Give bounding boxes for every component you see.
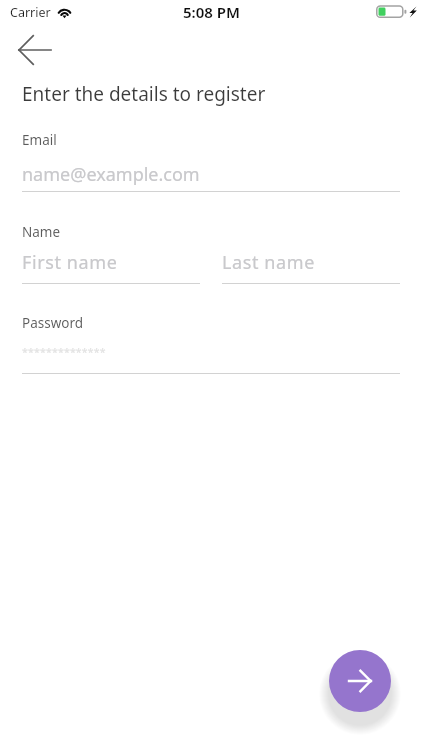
staticText: Enter the details to register bbox=[22, 81, 266, 107]
button[interactable]: Continue bbox=[329, 650, 391, 712]
other: Battery charging bbox=[376, 5, 418, 18]
button[interactable]: Back bbox=[6, 32, 64, 68]
staticText: name@example.com bbox=[22, 162, 200, 187]
button[interactable]: First name bbox=[22, 242, 200, 284]
staticText: 5:08 PM bbox=[183, 2, 240, 22]
button[interactable]: name@example.com bbox=[22, 154, 400, 192]
staticText: Last name bbox=[222, 250, 315, 275]
staticText: Password bbox=[22, 314, 84, 332]
staticText: Name bbox=[22, 223, 61, 241]
button[interactable]: ************** bbox=[22, 336, 400, 374]
button[interactable]: Last name bbox=[222, 242, 400, 284]
staticText: ************** bbox=[22, 345, 106, 359]
staticText: Carrier bbox=[10, 4, 51, 21]
other: Wi-Fi bbox=[56, 4, 73, 18]
staticText: Email bbox=[22, 131, 57, 149]
staticText: First name bbox=[22, 250, 118, 275]
